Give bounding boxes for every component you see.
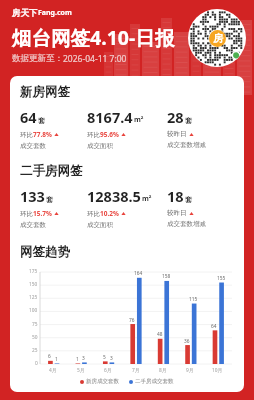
staticText: 新房成交套数 [86,378,119,385]
button[interactable]: 扫描二维码 [188,9,246,67]
button[interactable]: 房天下 Fang.com [12,8,72,19]
staticText: 1 [76,356,79,363]
staticText: 28 [167,107,184,127]
staticText: 2026-04-11 7:00 [63,53,127,65]
staticText: 6月 [104,367,112,374]
staticText: 36 [184,338,190,345]
staticText: 新房网签 [20,84,70,100]
button[interactable]: 18 [167,186,234,228]
staticText: 64 [211,323,217,330]
staticText: 158 [162,273,171,280]
staticText: 套 [185,195,192,204]
staticText: 76 [129,317,135,324]
staticText: 二手房网签 [20,163,83,179]
staticText: 7月 [132,367,140,374]
staticText: m² [142,194,152,204]
staticText: 115 [189,296,198,303]
staticText: 48 [157,331,163,338]
staticText: 套 [185,116,192,125]
button[interactable]: 64 [20,107,87,150]
staticText: 房天下 [12,8,38,19]
staticText: 18 [167,186,184,206]
staticText: 8月 [159,367,167,374]
staticText: 较昨日 [167,209,187,217]
staticText: 3 [110,355,113,362]
staticText: 烟台网签4.10-日报 [12,24,175,51]
staticText: 50 [32,334,38,341]
button[interactable]: 12838.5 [87,186,167,229]
staticText: 6 [48,353,51,360]
staticText: 3 [82,355,85,362]
staticText: 网签趋势 [20,244,70,260]
staticText: 4月 [49,367,57,374]
staticText: 150 [29,281,38,288]
staticText: 套 [38,116,45,125]
staticText: 175 [29,268,38,275]
staticText: 10.2% [100,209,119,218]
staticText: 较昨日 [167,130,187,138]
staticText: 5 [103,354,106,361]
staticText: 155 [217,275,226,282]
staticText: 75 [32,321,38,328]
staticText: 25 [32,347,38,354]
staticText: 环比 [20,210,33,218]
staticText: 数据更新至： [12,53,63,64]
staticText: 125 [29,294,38,301]
staticText: 100 [29,307,38,314]
staticText: 1 [55,356,58,363]
staticText: 成交套数 [20,142,46,150]
button[interactable]: 新房成交套数 [80,378,119,385]
staticText: 10月 [212,367,223,374]
staticText: 5月 [77,367,85,374]
button[interactable]: 二手房成交套数 [129,378,174,385]
button[interactable]: 28 [167,107,234,149]
staticText: 环比 [20,131,33,139]
staticText: 成交套数增减 [167,141,206,149]
staticText: 164 [134,270,143,277]
staticText: 8167.4 [87,107,133,127]
staticText: 77.8% [33,130,52,139]
staticText: 房 [213,32,223,45]
staticText: 套 [46,195,53,204]
button[interactable]: 8167.4 [87,107,167,150]
staticText: 12838.5 [87,186,141,206]
staticText: 环比 [87,131,100,139]
staticText: 成交面积 [87,221,113,229]
staticText: Fang.com [38,8,72,18]
staticText: 二手房成交套数 [135,378,174,385]
staticText: 15.7% [33,209,52,218]
staticText: 成交套数 [20,221,46,229]
staticText: 64 [20,107,37,127]
staticText: 成交套数增减 [167,220,206,228]
button[interactable]: 133 [20,186,87,229]
staticText: 成交面积 [87,142,113,150]
staticText: 环比 [87,210,100,218]
staticText: m² [134,115,144,125]
staticText: 133 [20,186,45,206]
staticText: 95.6% [100,130,119,139]
staticText: 9月 [186,367,194,374]
staticText: 0 [35,360,38,367]
